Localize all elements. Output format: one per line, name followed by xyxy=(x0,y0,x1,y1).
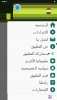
staticText: الرئيسية xyxy=(35,22,48,27)
staticText: قيم التطبيق xyxy=(30,73,48,78)
button[interactable]: الإعدادات xyxy=(7,28,57,36)
staticText: مشاركة التطبيق xyxy=(23,51,48,56)
button[interactable]: قيم التطبيق xyxy=(7,72,57,79)
staticText: راسلنا xyxy=(39,80,48,85)
staticText: عن التطبيق xyxy=(31,44,48,49)
staticText: سياسة الخصوصية xyxy=(21,66,48,70)
button[interactable]: عن التطبيق xyxy=(7,43,57,50)
button[interactable]: الإشعارات xyxy=(7,86,57,93)
button[interactable]: اتصل بنا xyxy=(7,36,57,43)
button[interactable]: الرئيسية xyxy=(7,21,57,28)
button[interactable]: سياسة الخصوصية xyxy=(7,64,57,72)
staticText: الإشعارات xyxy=(32,87,48,92)
staticText: الإعدادات xyxy=(33,30,48,34)
button[interactable]: راسلنا xyxy=(7,79,57,86)
button[interactable]: مشاركة التطبيق xyxy=(7,50,57,57)
staticText: اتصل بنا xyxy=(36,37,48,42)
staticText: تطبيقاتنا الأخرى xyxy=(25,58,48,63)
button[interactable]: تطبيقاتنا الأخرى xyxy=(7,57,57,64)
